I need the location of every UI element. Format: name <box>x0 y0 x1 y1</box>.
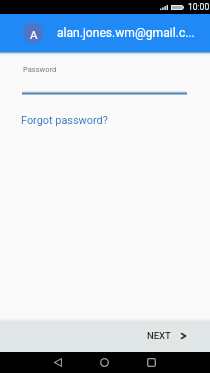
button[interactable]: Account <box>23 23 43 43</box>
staticText: alan.jones.wm@gmail.c... <box>57 26 195 40</box>
button[interactable]: Back <box>46 352 69 373</box>
staticText: Forgot password? <box>21 114 108 127</box>
button[interactable]: NEXT <box>133 326 210 348</box>
button[interactable]: Recent apps <box>140 352 163 373</box>
staticText: NEXT <box>147 330 171 341</box>
button[interactable]: Home <box>93 352 116 373</box>
staticText: Password <box>23 65 57 74</box>
button[interactable]: Forgot password? <box>21 114 108 127</box>
staticText: A <box>30 28 38 41</box>
staticText: 10:00 <box>188 2 210 12</box>
